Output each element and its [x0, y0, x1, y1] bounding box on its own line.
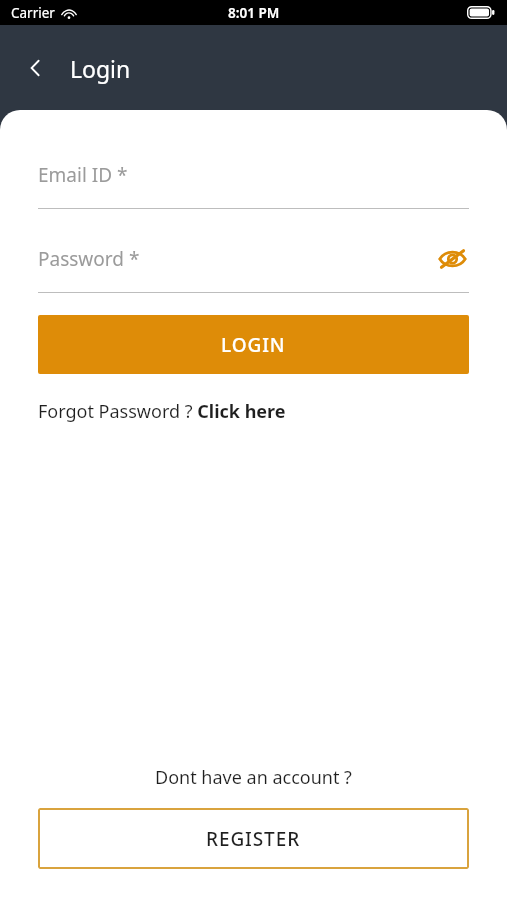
button[interactable]: Back	[14, 46, 58, 90]
staticText: Dont have an account ?	[155, 765, 352, 790]
staticText: Password *	[38, 246, 140, 272]
button[interactable]: Forgot Password ? Click here	[38, 399, 286, 424]
staticText: Email ID *	[38, 162, 128, 188]
button[interactable]: Password *	[38, 238, 469, 293]
button[interactable]: Show password	[435, 242, 469, 276]
button[interactable]: LOGIN	[38, 315, 469, 374]
staticText: LOGIN	[221, 332, 286, 358]
button[interactable]: Email ID *	[38, 154, 469, 209]
staticText: REGISTER	[206, 826, 301, 852]
staticText: Forgot Password ? Click here	[38, 399, 286, 424]
staticText: Carrier	[11, 4, 55, 22]
button[interactable]: REGISTER	[38, 808, 469, 869]
staticText: Login	[70, 53, 131, 84]
staticText: 8:01 PM	[228, 4, 280, 22]
